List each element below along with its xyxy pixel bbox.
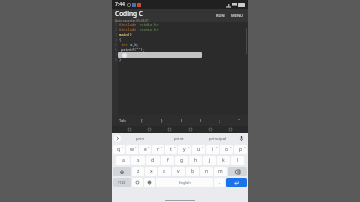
button[interactable]: e bbox=[139, 145, 151, 154]
staticText: 2 bbox=[135, 145, 137, 148]
button[interactable]: t bbox=[165, 145, 177, 154]
staticText: int bbox=[119, 42, 128, 47]
staticText: Auto saved at 05:43:01 bbox=[115, 19, 149, 22]
button[interactable]: } bbox=[152, 115, 172, 126]
button[interactable]: prin bbox=[121, 133, 159, 144]
staticText: n bbox=[205, 168, 209, 175]
button[interactable]: Voice input bbox=[237, 133, 246, 144]
staticText: <conio.h> bbox=[137, 27, 159, 32]
staticText: #include bbox=[119, 27, 137, 32]
staticText: 7 bbox=[115, 53, 117, 57]
staticText: m bbox=[218, 168, 223, 175]
button[interactable]: Clipboard action bbox=[167, 127, 172, 132]
staticText: a bbox=[122, 157, 125, 164]
button[interactable]: " bbox=[229, 115, 248, 126]
button[interactable]: Tab bbox=[112, 115, 132, 126]
button[interactable]: s bbox=[131, 156, 145, 165]
staticText: 6 bbox=[188, 145, 190, 148]
staticText: 8 bbox=[115, 58, 117, 62]
staticText: } bbox=[161, 118, 163, 123]
button[interactable]: MENU bbox=[229, 11, 245, 20]
button[interactable]: a bbox=[116, 156, 130, 165]
button[interactable]: Shift bbox=[113, 167, 131, 176]
staticText: RUN bbox=[216, 13, 225, 18]
button[interactable]: Clipboard action bbox=[147, 127, 152, 132]
button[interactable]: y bbox=[178, 145, 191, 154]
staticText: ?123 bbox=[118, 180, 126, 185]
button[interactable]: Clipboard action bbox=[208, 127, 213, 132]
button[interactable]: Clipboard action bbox=[188, 127, 193, 132]
staticText: 9 bbox=[230, 145, 232, 148]
staticText: " bbox=[238, 118, 240, 123]
button[interactable]: { bbox=[132, 115, 152, 126]
button[interactable]: Backspace bbox=[228, 167, 247, 176]
button[interactable]: n bbox=[200, 167, 213, 176]
staticText: e bbox=[144, 146, 147, 153]
button[interactable]: f bbox=[161, 156, 174, 165]
button[interactable]: More suggestions bbox=[114, 135, 121, 142]
staticText: y bbox=[183, 146, 186, 153]
staticText: x bbox=[150, 168, 153, 175]
button[interactable]: z bbox=[132, 167, 144, 176]
button[interactable]: r bbox=[152, 145, 164, 154]
button[interactable]: principal bbox=[198, 133, 237, 144]
staticText: print bbox=[174, 136, 184, 142]
button[interactable]: ) bbox=[191, 115, 210, 126]
button[interactable]: g bbox=[175, 156, 188, 165]
button[interactable]: #include bbox=[118, 22, 248, 115]
button[interactable]: p bbox=[234, 145, 247, 154]
button[interactable]: . bbox=[214, 178, 225, 187]
button[interactable]: Clipboard action bbox=[228, 127, 233, 132]
staticText: 6 bbox=[115, 48, 117, 52]
button[interactable]: Clipboard action bbox=[127, 127, 132, 132]
staticText: k bbox=[222, 157, 225, 164]
staticText: p bbox=[239, 146, 243, 153]
button[interactable]: ( bbox=[172, 115, 191, 126]
button[interactable]: print bbox=[159, 133, 198, 144]
button[interactable]: k bbox=[217, 156, 230, 165]
button[interactable]: d bbox=[146, 156, 160, 165]
staticText: Tab bbox=[119, 118, 126, 123]
staticText: o bbox=[225, 146, 229, 153]
button[interactable]: u bbox=[192, 145, 205, 154]
staticText: s bbox=[137, 157, 140, 164]
staticText: printf(""); bbox=[119, 47, 145, 52]
staticText: 1 bbox=[122, 145, 124, 148]
staticText: 8 bbox=[216, 145, 218, 148]
button[interactable]: v bbox=[172, 167, 185, 176]
staticText: z bbox=[137, 168, 140, 175]
button[interactable]: x bbox=[145, 167, 157, 176]
staticText: i bbox=[212, 146, 214, 153]
staticText: 2 bbox=[115, 28, 117, 32]
button[interactable]: o bbox=[220, 145, 233, 154]
staticText: Coding C bbox=[115, 9, 143, 18]
button[interactable]: m bbox=[214, 167, 227, 176]
button[interactable]: w bbox=[126, 145, 138, 154]
button[interactable]: b bbox=[186, 167, 199, 176]
staticText: 1 bbox=[115, 23, 117, 27]
staticText: } bbox=[119, 57, 122, 62]
button[interactable]: q bbox=[113, 145, 125, 154]
button[interactable]: h bbox=[189, 156, 202, 165]
staticText: 7 bbox=[202, 145, 204, 148]
staticText: w bbox=[130, 146, 134, 153]
staticText: j bbox=[209, 157, 211, 164]
staticText: l bbox=[237, 157, 239, 164]
button[interactable]: Emoji bbox=[132, 178, 143, 187]
button[interactable]: English bbox=[156, 178, 213, 187]
staticText: c bbox=[163, 168, 166, 175]
staticText: English bbox=[179, 180, 191, 185]
button[interactable]: ; bbox=[210, 115, 229, 126]
staticText: r bbox=[157, 146, 160, 153]
button[interactable]: l bbox=[231, 156, 244, 165]
staticText: v bbox=[177, 168, 180, 175]
button[interactable]: i bbox=[206, 145, 219, 154]
button[interactable]: Enter bbox=[226, 178, 247, 187]
button[interactable]: j bbox=[203, 156, 216, 165]
button[interactable]: ?123 bbox=[113, 178, 131, 187]
button[interactable]: c bbox=[158, 167, 171, 176]
staticText: . bbox=[219, 179, 221, 186]
staticText: 3 bbox=[115, 33, 117, 37]
button[interactable]: RUN bbox=[214, 11, 227, 20]
button[interactable]: Change language bbox=[144, 178, 155, 187]
